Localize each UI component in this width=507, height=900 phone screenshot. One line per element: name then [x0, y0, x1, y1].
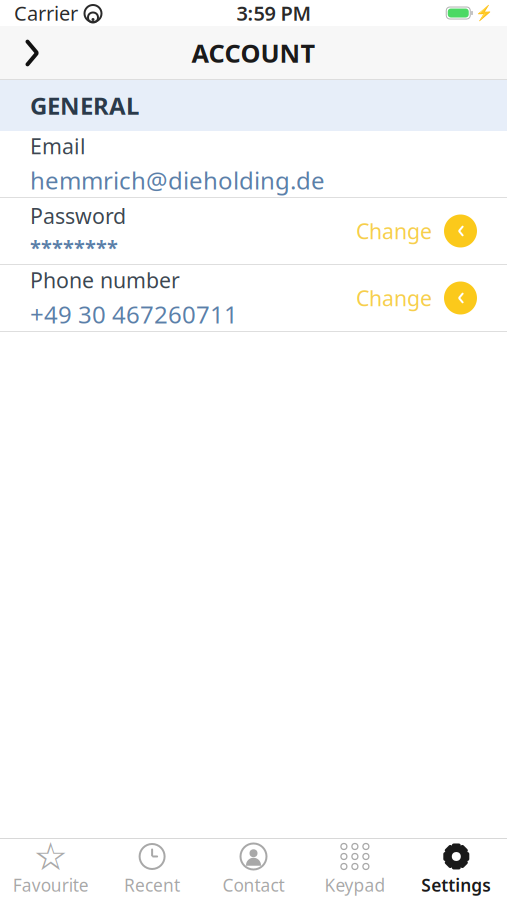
staticText: hemmrich@dieholding.de	[30, 164, 325, 196]
staticText: Keypad	[324, 873, 385, 896]
staticText: Settings	[421, 873, 491, 896]
staticText: ★	[33, 834, 68, 878]
button[interactable]: Back	[10, 31, 54, 75]
staticText: Email	[30, 132, 86, 160]
staticText: ⚡	[475, 5, 493, 21]
staticText: ACCOUNT	[191, 36, 315, 70]
staticText: Favourite	[13, 873, 89, 896]
staticText: GENERAL	[30, 90, 139, 121]
button[interactable]: Settings	[406, 838, 507, 900]
button[interactable]: Keypad	[304, 838, 406, 900]
staticText: Carrier	[14, 0, 78, 26]
staticText: Recent	[124, 873, 180, 896]
staticText: Password	[30, 202, 126, 230]
button[interactable]: Change	[356, 273, 477, 322]
staticText: +49 30 467260711	[30, 298, 238, 330]
staticText: Change	[356, 217, 432, 245]
staticText: ★	[38, 841, 63, 872]
staticText: Change	[356, 284, 432, 312]
staticText: ********	[30, 234, 118, 260]
staticText: Phone number	[30, 266, 180, 294]
staticText: Contact	[222, 873, 284, 896]
button[interactable]: Recent	[101, 838, 203, 900]
button[interactable]: Contact	[203, 838, 304, 900]
button[interactable]: ★	[0, 838, 101, 900]
button[interactable]: Change	[356, 206, 477, 255]
staticText: 3:59 PM	[236, 0, 311, 26]
